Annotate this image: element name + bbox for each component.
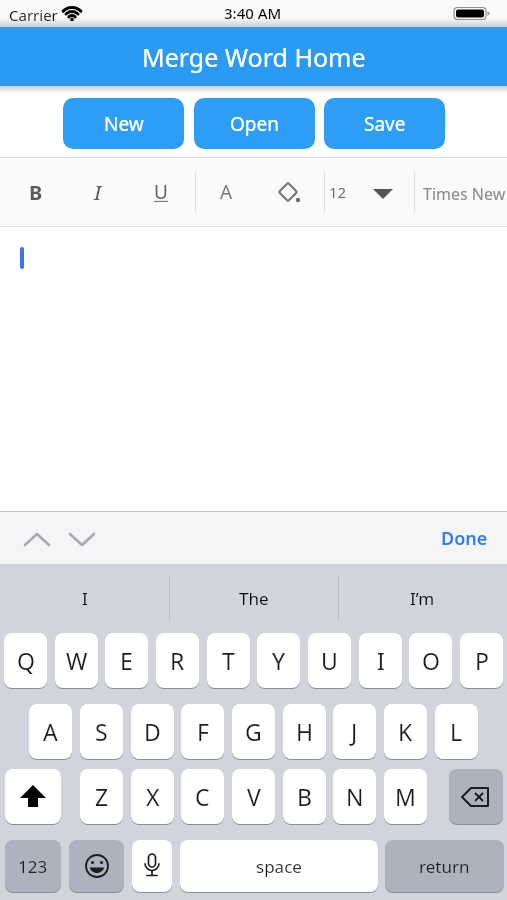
staticText: C <box>195 781 210 812</box>
button[interactable]: V <box>232 769 275 825</box>
button[interactable]: N <box>333 769 376 825</box>
button[interactable]: K <box>384 704 427 760</box>
button[interactable]: A <box>29 704 72 760</box>
staticText: 123 <box>18 855 48 878</box>
staticText: U <box>321 645 338 676</box>
button[interactable]: I <box>78 172 118 212</box>
button[interactable]: Save <box>324 98 445 149</box>
button[interactable]: B <box>16 172 56 212</box>
staticText: Save <box>364 111 406 137</box>
button[interactable]: T <box>207 633 250 689</box>
button[interactable]: A <box>206 172 246 212</box>
staticText: F <box>197 716 209 747</box>
button[interactable]: space <box>180 840 378 893</box>
button[interactable]: D <box>131 704 174 760</box>
staticText: Z <box>95 781 109 812</box>
button[interactable]: New <box>63 98 184 149</box>
staticText: Q <box>17 645 35 676</box>
button[interactable] <box>5 769 61 825</box>
staticText: X <box>146 781 160 812</box>
button[interactable]: return <box>385 840 504 893</box>
staticText: W <box>66 645 88 676</box>
staticText: E <box>120 645 133 676</box>
button[interactable]: R <box>156 633 199 689</box>
button[interactable]: C <box>181 769 224 825</box>
button[interactable] <box>449 769 503 825</box>
button[interactable] <box>373 189 393 199</box>
staticText: K <box>398 716 413 747</box>
staticText: M <box>395 781 416 812</box>
staticText: Carrier <box>9 5 58 25</box>
staticText: Times New Roman <box>423 183 507 205</box>
staticText: B <box>297 781 312 812</box>
button[interactable]: L <box>435 704 478 760</box>
button[interactable] <box>276 180 304 206</box>
staticText: New <box>104 111 144 137</box>
staticText: L <box>450 716 463 747</box>
button[interactable]: G <box>232 704 275 760</box>
button[interactable] <box>69 532 95 547</box>
staticText: space <box>256 855 302 878</box>
staticText: Done <box>441 526 488 551</box>
button[interactable]: I <box>5 573 165 623</box>
button[interactable]: 123 <box>5 840 61 893</box>
staticText: Open <box>230 111 279 137</box>
button[interactable] <box>24 532 50 547</box>
staticText: I’m <box>410 587 435 610</box>
button[interactable]: P <box>460 633 503 689</box>
button[interactable]: F <box>181 704 224 760</box>
staticText: R <box>170 645 185 676</box>
staticText: D <box>144 716 161 747</box>
button[interactable]: Y <box>257 633 300 689</box>
staticText: U <box>154 179 168 205</box>
button[interactable]: U <box>141 172 181 212</box>
button[interactable]: Z <box>80 769 123 825</box>
staticText: P <box>475 645 489 676</box>
button[interactable]: I’m <box>342 573 502 623</box>
staticText: S <box>95 716 108 747</box>
staticText: A <box>220 179 233 205</box>
button[interactable]: The <box>174 573 334 623</box>
button[interactable]: Q <box>4 633 47 689</box>
staticText: A <box>43 716 58 747</box>
staticText: V <box>247 781 261 812</box>
button[interactable]: 12 <box>320 172 356 212</box>
button[interactable]: S <box>80 704 123 760</box>
staticText: I <box>377 645 385 676</box>
staticText: Merge Word Home <box>142 40 366 74</box>
staticText: B <box>29 179 43 206</box>
button[interactable]: O <box>409 633 452 689</box>
button[interactable]: J <box>333 704 376 760</box>
staticText: 3:40 AM <box>224 3 282 23</box>
staticText: N <box>346 781 364 812</box>
staticText: return <box>419 855 470 878</box>
button[interactable] <box>132 840 172 893</box>
staticText: O <box>422 645 440 676</box>
button[interactable]: E <box>105 633 148 689</box>
staticText: I <box>94 179 102 206</box>
button[interactable]: B <box>283 769 326 825</box>
button[interactable]: I <box>359 633 402 689</box>
staticText: H <box>296 716 314 747</box>
staticText: 12 <box>329 182 347 202</box>
button[interactable]: M <box>384 769 427 825</box>
button[interactable]: X <box>131 769 174 825</box>
button[interactable]: U <box>308 633 351 689</box>
staticText: Y <box>272 645 286 676</box>
button[interactable]: Done <box>426 518 502 558</box>
button[interactable]: Open <box>194 98 315 149</box>
button[interactable]: W <box>55 633 98 689</box>
button[interactable]: H <box>283 704 326 760</box>
staticText: G <box>245 716 262 747</box>
staticText: T <box>222 645 235 676</box>
button[interactable] <box>69 840 124 893</box>
staticText: I <box>82 587 88 610</box>
staticText: The <box>239 587 269 610</box>
staticText: J <box>351 716 358 747</box>
